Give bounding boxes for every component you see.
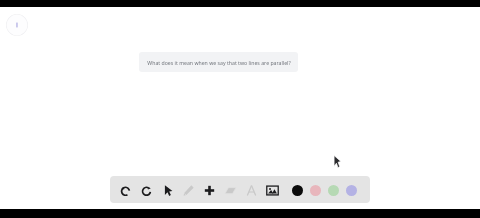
- button[interactable]: Undo: [117, 179, 134, 201]
- button[interactable]: Text: [243, 179, 260, 201]
- button[interactable]: Green colour: [326, 179, 340, 201]
- button[interactable]: Insert image: [264, 179, 281, 201]
- button[interactable]: Pen: [180, 179, 197, 201]
- button[interactable]: Redo: [138, 179, 155, 201]
- button[interactable]: Black colour: [290, 179, 304, 201]
- staticText: What does it mean when we say that two l…: [147, 59, 291, 66]
- button[interactable]: Eraser: [222, 179, 239, 201]
- button[interactable]: Pink colour: [308, 179, 322, 201]
- button[interactable]: Back: [6, 14, 28, 36]
- button[interactable]: Purple colour: [344, 179, 358, 201]
- button[interactable]: What does it mean when we say that two l…: [139, 52, 298, 72]
- button[interactable]: Select: [159, 179, 176, 201]
- button[interactable]: Add: [201, 179, 218, 201]
